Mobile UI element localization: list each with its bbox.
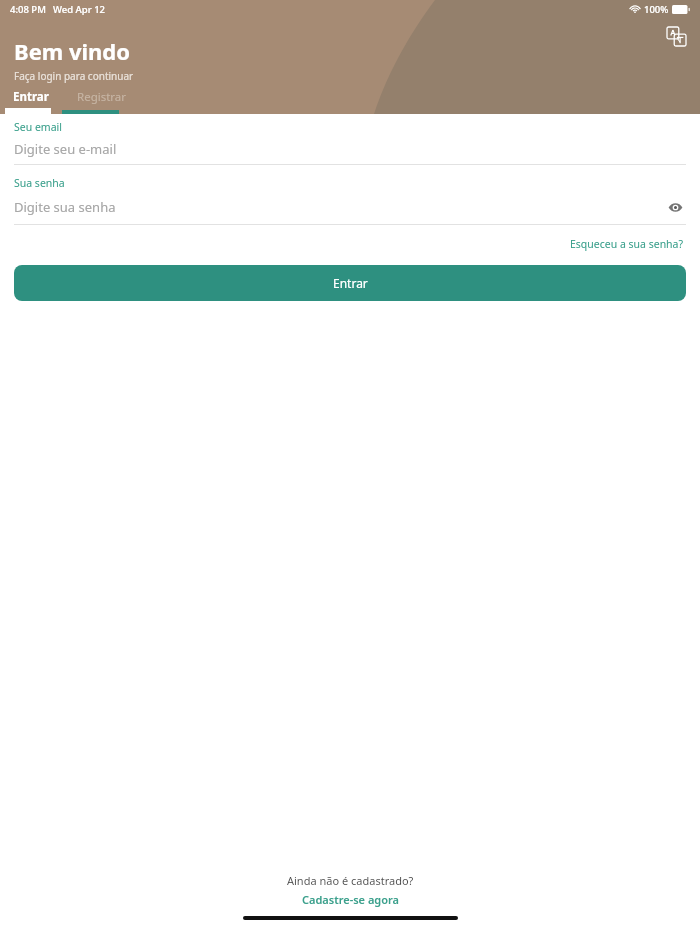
button[interactable]: Show password	[664, 196, 686, 218]
button[interactable]: Entrar	[0, 80, 62, 114]
button[interactable]: Registrar	[62, 80, 142, 114]
button[interactable]: Translate language	[660, 20, 692, 52]
button[interactable]: Seu email	[14, 120, 686, 165]
button[interactable]: Sua senha	[14, 176, 686, 225]
staticText: Bem vindo	[14, 36, 131, 66]
button[interactable]: Entrar	[14, 265, 686, 301]
staticText: Entrar	[13, 89, 49, 105]
staticText: 4:08 PM	[10, 3, 46, 16]
staticText: Wed Apr 12	[53, 3, 106, 16]
staticText: Esqueceu a sua senha?	[570, 237, 684, 251]
button[interactable]: Esqueceu a sua senha?	[568, 235, 686, 253]
staticText: Entrar	[333, 275, 368, 291]
staticText: Sua senha	[14, 176, 65, 190]
button[interactable]: Cadastre-se agora	[298, 891, 403, 908]
staticText: Digite sua senha	[14, 198, 664, 216]
staticText: Seu email	[14, 120, 62, 134]
staticText: Digite seu e-mail	[14, 140, 686, 158]
staticText: 100%	[644, 3, 669, 16]
staticText: Ainda não é cadastrado?	[287, 873, 414, 888]
staticText: Faça login para continuar	[14, 69, 134, 83]
staticText: Registrar	[77, 89, 127, 105]
staticText: Cadastre-se agora	[302, 892, 399, 907]
